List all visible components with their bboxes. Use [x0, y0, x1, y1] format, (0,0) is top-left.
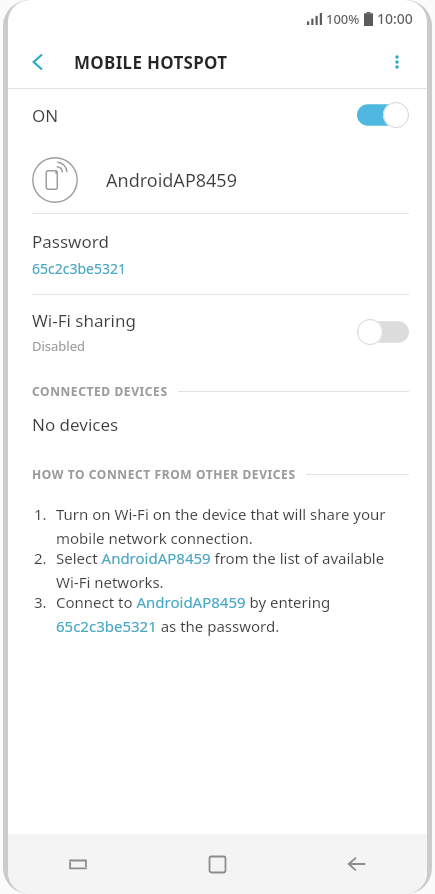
- button[interactable]: AndroidAP8459: [8, 147, 427, 213]
- staticText: 3.: [34, 592, 56, 612]
- staticText: 100%: [326, 10, 360, 28]
- button[interactable]: Wi-Fi sharing: [8, 295, 427, 369]
- staticText: No devices: [32, 413, 119, 436]
- staticText: 1.: [34, 504, 56, 524]
- staticText: 10:00: [377, 9, 413, 28]
- staticText: Select AndroidAP8459 from the list of av…: [56, 548, 409, 592]
- staticText: Connect to AndroidAP8459 by entering 65c…: [56, 592, 409, 636]
- button[interactable]: Back: [16, 40, 60, 84]
- button[interactable]: Password: [8, 214, 427, 294]
- button[interactable]: Back: [287, 834, 427, 894]
- button[interactable]: ON: [8, 89, 427, 141]
- button[interactable]: More options: [375, 40, 419, 84]
- staticText: Turn on Wi-Fi on the device that will sh…: [56, 504, 409, 548]
- staticText: Password: [32, 230, 109, 253]
- button[interactable]: Recents: [8, 834, 147, 894]
- staticText: HOW TO CONNECT FROM OTHER DEVICES: [32, 466, 296, 482]
- staticText: 2.: [34, 548, 56, 568]
- staticText: Disabled: [32, 337, 86, 355]
- button[interactable]: Home: [147, 834, 287, 894]
- staticText: Wi-Fi sharing: [32, 309, 136, 332]
- staticText: 65c2c3be5321: [32, 259, 127, 278]
- staticText: AndroidAP8459: [106, 168, 237, 193]
- staticText: MOBILE HOTSPOT: [74, 51, 228, 74]
- staticText: CONNECTED DEVICES: [32, 383, 168, 399]
- staticText: ON: [32, 104, 59, 127]
